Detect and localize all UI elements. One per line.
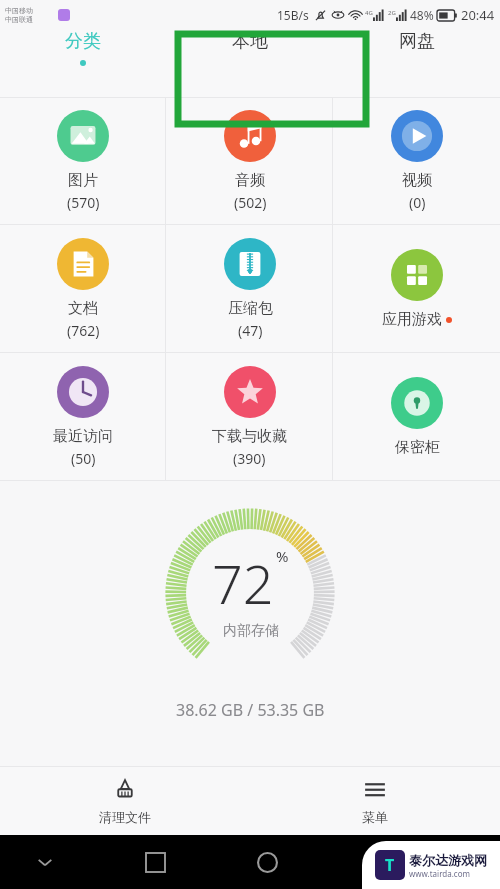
button[interactable]: 保密柜 xyxy=(333,353,500,480)
button[interactable]: 应用游戏 xyxy=(333,225,500,352)
staticText: 音频 xyxy=(235,171,265,190)
button[interactable]: 视频 xyxy=(333,98,500,224)
button[interactable]: Recent apps xyxy=(136,843,174,881)
button[interactable]: 压缩包 xyxy=(166,225,333,352)
staticText: 泰尔达游戏网 xyxy=(409,852,487,868)
button[interactable]: Home xyxy=(248,843,286,881)
staticText: 中国移动 xyxy=(5,6,33,15)
button[interactable]: 菜单 xyxy=(250,767,500,835)
staticText: 本地 xyxy=(232,30,268,53)
button[interactable]: 音频 xyxy=(166,98,333,224)
staticText: 内部存储 xyxy=(223,622,279,640)
button[interactable]: Hide keyboard xyxy=(28,845,62,879)
staticText: 分类 xyxy=(65,30,101,53)
staticText: 压缩包 xyxy=(228,299,273,318)
staticText: 视频 xyxy=(402,171,432,190)
staticText: www.tairda.com xyxy=(409,868,470,879)
staticText: 菜单 xyxy=(362,809,388,825)
staticText: (0) xyxy=(409,193,426,212)
staticText: 应用游戏 xyxy=(382,310,442,329)
staticText: 清理文件 xyxy=(99,809,151,825)
button[interactable]: Back xyxy=(359,843,397,881)
staticText: (50) xyxy=(71,449,96,468)
button[interactable]: 本地 xyxy=(166,30,333,53)
staticText: (47) xyxy=(238,321,263,340)
button[interactable]: 清理文件 xyxy=(0,767,250,835)
staticText: (570) xyxy=(67,193,100,212)
staticText: 20:44 xyxy=(461,6,495,24)
button[interactable]: 最近访问 xyxy=(0,353,166,480)
button[interactable]: 文档 xyxy=(0,225,166,352)
staticText: 网盘 xyxy=(399,30,435,53)
staticText: 图片 xyxy=(68,171,98,190)
staticText: 中国联通 xyxy=(5,15,33,24)
staticText: 下载与收藏 xyxy=(212,427,287,446)
staticText: 48% xyxy=(410,7,434,23)
staticText: (762) xyxy=(67,321,100,340)
staticText: T xyxy=(385,854,395,876)
button[interactable]: 图片 xyxy=(0,98,166,224)
staticText: 72 xyxy=(212,546,274,620)
staticText: 保密柜 xyxy=(395,438,440,457)
staticText: 4G xyxy=(365,9,373,17)
staticText: 最近访问 xyxy=(53,427,113,446)
staticText: % xyxy=(276,546,289,566)
button[interactable]: 分类 xyxy=(0,30,166,66)
button[interactable]: 网盘 xyxy=(333,30,500,53)
staticText: 文档 xyxy=(68,299,98,318)
staticText: 38.62 GB / 53.35 GB xyxy=(176,699,325,721)
staticText: 2G xyxy=(388,9,396,17)
staticText: (502) xyxy=(234,193,267,212)
staticText: (390) xyxy=(233,449,266,468)
staticText: 15B/s xyxy=(277,7,309,23)
button[interactable]: 下载与收藏 xyxy=(166,353,333,480)
